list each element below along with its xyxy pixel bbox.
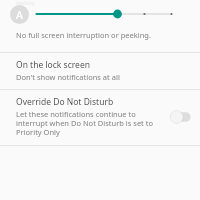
button[interactable]: Override Do Not Disturb <box>0 90 200 145</box>
staticText: On the lock screen <box>16 59 90 71</box>
staticText: Let these notifications continue to inte… <box>16 109 162 138</box>
button[interactable]: On the lock screen <box>0 53 200 89</box>
staticText: Don't show notifications at all <box>16 72 120 82</box>
staticText: Override Do Not Disturb <box>16 96 114 108</box>
button[interactable]: Importance level <box>34 4 174 24</box>
staticText: A <box>16 7 24 22</box>
staticText: Alerting <box>16 0 35 7</box>
staticText: No full screen interruption or peeking. <box>16 30 151 40</box>
button[interactable]: Override Do Not Disturb toggle <box>166 108 192 126</box>
